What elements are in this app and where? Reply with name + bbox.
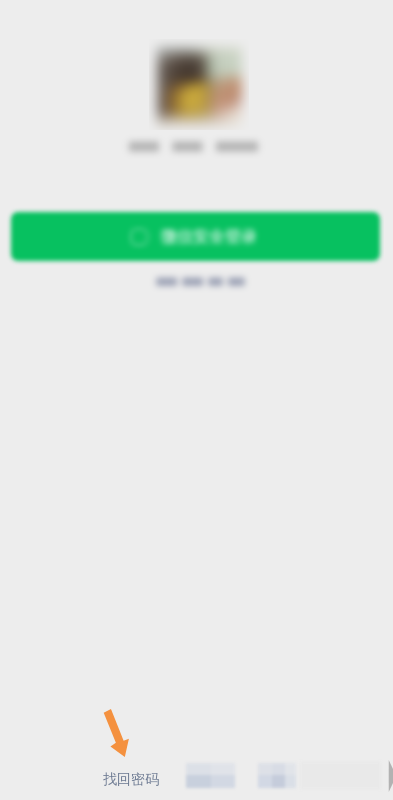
staticText: 微信安全登录 — [161, 227, 257, 247]
button[interactable]: 找回密码 — [94, 764, 168, 796]
other: Arrow pointing to retrieve password — [100, 705, 132, 761]
button[interactable]: 微信安全登录 — [11, 212, 380, 261]
staticText: 找回密码 — [103, 771, 159, 789]
